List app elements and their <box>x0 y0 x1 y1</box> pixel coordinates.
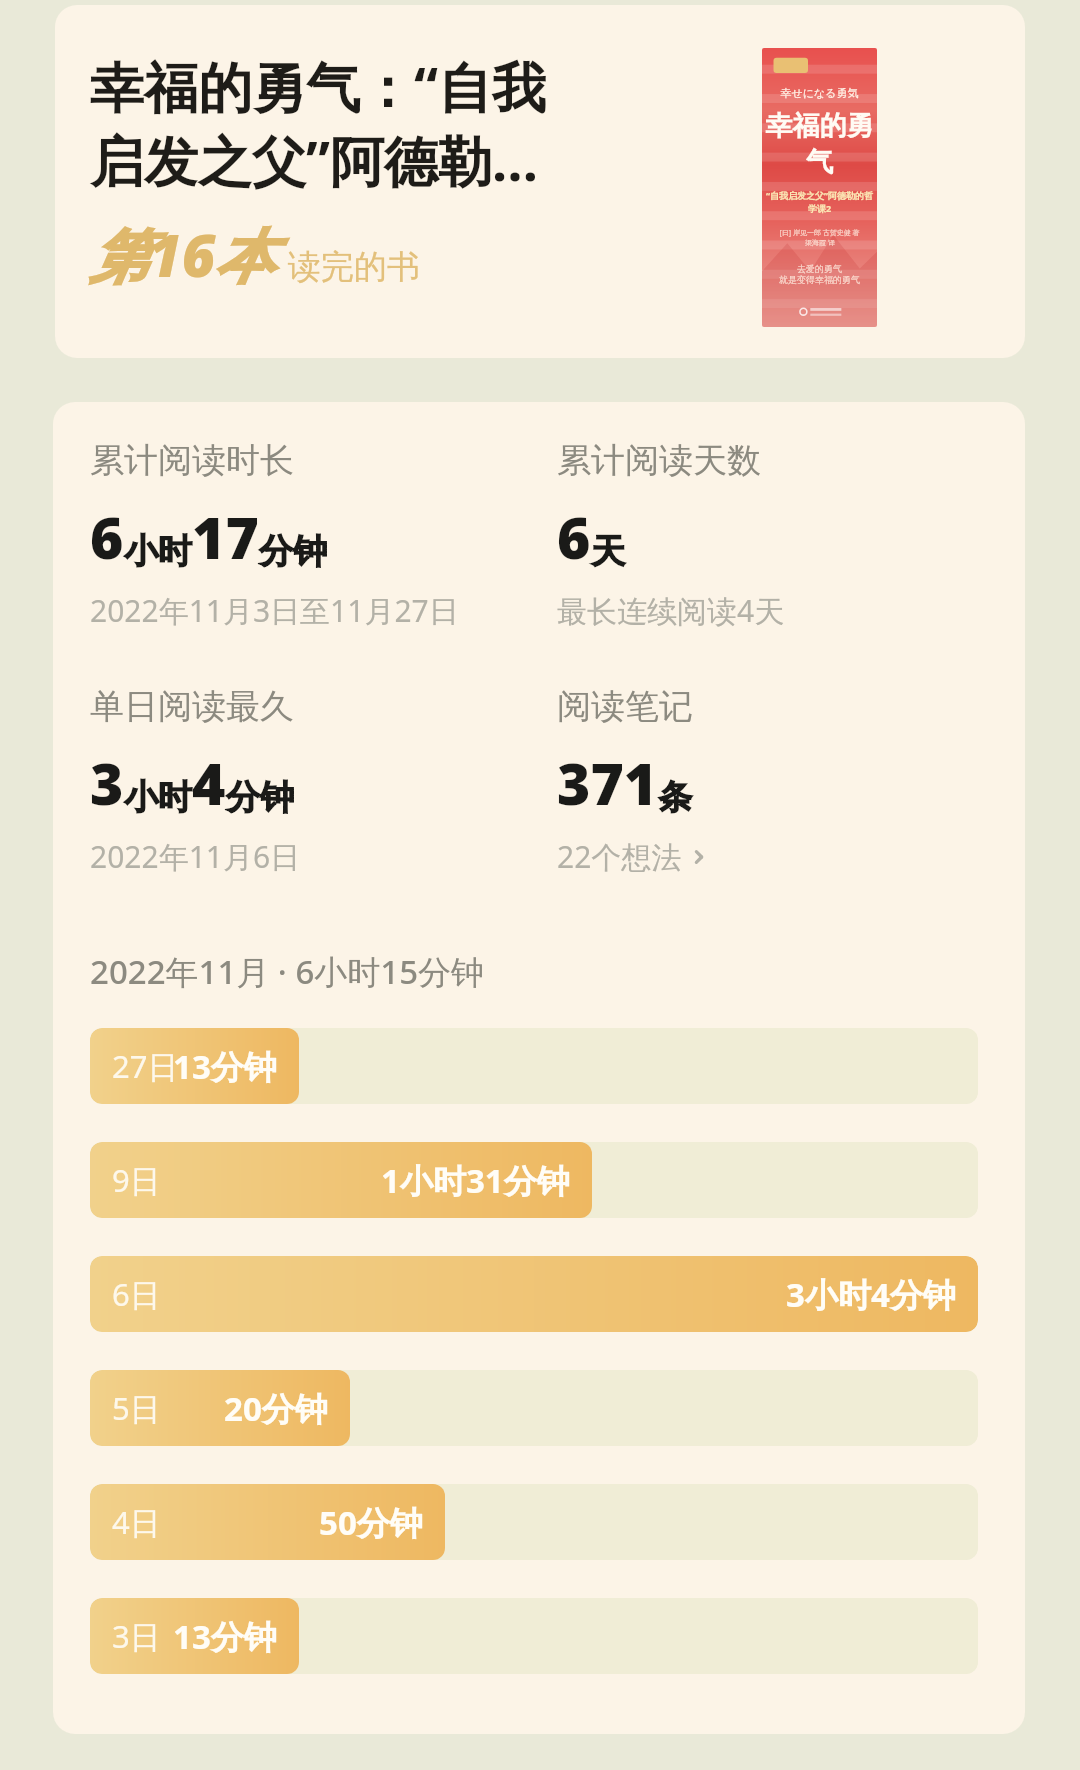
staticText: 2022年11月3日至11月27日 <box>90 590 459 631</box>
staticText: 渠海霞 译 <box>805 238 835 248</box>
staticText: 分钟 <box>259 530 327 573</box>
staticText: 9日 <box>112 1159 161 1201</box>
staticText: 1小时31分钟 <box>381 1158 570 1203</box>
staticText: 13分钟 <box>173 1044 277 1089</box>
staticText: 小时 <box>124 776 192 819</box>
staticText: 20分钟 <box>224 1386 328 1431</box>
staticText: 幸せになる勇気 <box>780 86 859 100</box>
staticText: 2022年11月 · 6小时15分钟 <box>90 949 485 994</box>
staticText: 3小时4分钟 <box>786 1272 956 1317</box>
button[interactable]: 累计阅读时长 <box>90 439 557 631</box>
staticText: 13分钟 <box>173 1614 277 1659</box>
staticText: 6 <box>557 498 591 576</box>
button[interactable]: 累计阅读天数 <box>557 439 1025 631</box>
staticText: 读完的书 <box>288 246 420 288</box>
other: 查看想法 <box>688 846 710 868</box>
staticText: 4 <box>192 744 226 822</box>
button[interactable]: 27日 <box>90 1028 978 1104</box>
staticText: 单日阅读最久 <box>90 685 294 728</box>
staticText: 天 <box>591 530 625 573</box>
staticText: 17 <box>192 498 259 576</box>
button[interactable]: 4日 <box>90 1484 978 1560</box>
button[interactable]: 3日 <box>90 1598 978 1674</box>
staticText: “自我启发之父”阿德勒的哲学课2 <box>762 189 877 214</box>
staticText: 累计阅读时长 <box>90 439 294 482</box>
button[interactable]: 6日 <box>90 1256 978 1332</box>
staticText: 幸福的勇气：“自我 <box>90 49 547 123</box>
staticText: 4日 <box>112 1501 161 1543</box>
staticText: 第16本 <box>90 215 274 294</box>
staticText: 371 <box>557 744 658 822</box>
staticText: 小时 <box>124 530 192 573</box>
staticText: 5日 <box>112 1387 161 1429</box>
staticText: 22个想法 <box>557 836 682 877</box>
staticText: 3日 <box>112 1615 161 1657</box>
staticText: 阅读笔记 <box>557 685 693 728</box>
staticText: 去爱的勇气 <box>797 263 842 274</box>
button[interactable]: 9日 <box>90 1142 978 1218</box>
staticText: 启发之父”阿德勒… <box>90 123 539 197</box>
button[interactable]: 单日阅读最久 <box>90 685 557 877</box>
staticText: 分钟 <box>226 776 294 819</box>
button[interactable]: 5日 <box>90 1370 978 1446</box>
staticText: 6日 <box>112 1273 161 1315</box>
staticText: 条 <box>658 776 692 819</box>
button[interactable]: 幸福的勇气：“自我 <box>55 5 1025 358</box>
staticText: 幸福的勇气 <box>762 109 877 179</box>
staticText: 3 <box>90 744 124 822</box>
staticText: 最长连续阅读4天 <box>557 590 785 631</box>
staticText: 2022年11月6日 <box>90 836 301 877</box>
staticText: 27日 <box>112 1045 179 1087</box>
staticText: 50分钟 <box>319 1500 423 1545</box>
staticText: 就是变得幸福的勇气 <box>779 274 860 285</box>
staticText: [日] 岸见一郎 古贺史健 著 <box>779 228 860 238</box>
staticText: 6 <box>90 498 124 576</box>
button[interactable]: 阅读笔记 <box>557 685 1025 877</box>
staticText: 累计阅读天数 <box>557 439 761 482</box>
